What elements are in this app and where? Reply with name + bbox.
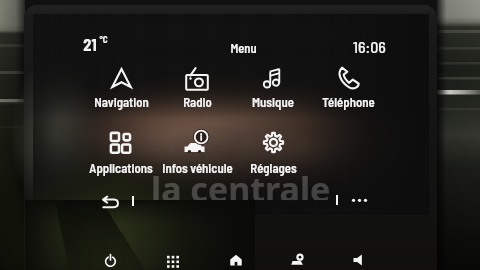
staticText: Téléphone [322, 94, 375, 109]
button[interactable]: All apps [157, 246, 189, 270]
staticText: Musique [252, 94, 294, 109]
staticText: 21 [83, 34, 97, 54]
staticText: Menu [230, 40, 257, 55]
button[interactable]: Back [96, 191, 126, 213]
button[interactable] [310, 59, 386, 110]
button[interactable]: Climate [282, 246, 314, 270]
staticText: 16:06 [353, 37, 386, 56]
staticText: °C [99, 34, 108, 45]
button[interactable] [159, 123, 235, 177]
button[interactable]: Power [94, 246, 126, 270]
button[interactable] [83, 61, 159, 110]
button[interactable] [235, 60, 311, 110]
button[interactable] [235, 124, 311, 177]
staticText: la centrale [151, 166, 331, 200]
staticText: Réglages [250, 160, 297, 175]
staticText: Radio [183, 94, 212, 109]
button[interactable]: Volume [343, 246, 375, 270]
staticText: Infos véhicule [162, 160, 233, 175]
staticText: Navigation [94, 94, 149, 109]
button[interactable] [83, 125, 159, 176]
button[interactable]: More options [348, 191, 370, 209]
staticText: Applications [89, 160, 153, 175]
button[interactable]: Home [220, 246, 252, 270]
button[interactable] [159, 60, 235, 110]
